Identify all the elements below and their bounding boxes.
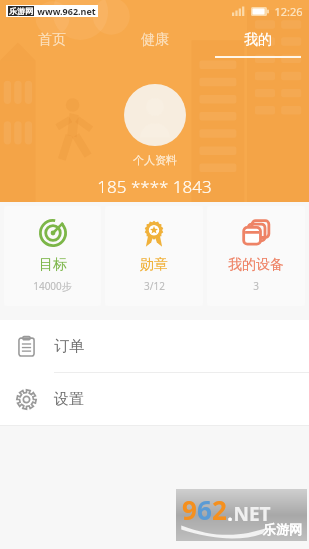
button[interactable]: 首页 bbox=[0, 31, 103, 58]
staticText: 勋章 bbox=[140, 256, 168, 274]
staticText: 健康 bbox=[141, 31, 169, 49]
button[interactable]: 我的 bbox=[206, 31, 309, 58]
staticText: 3/12 bbox=[144, 279, 165, 293]
staticText: 185 **** 1843 bbox=[97, 175, 212, 198]
staticText: 2 bbox=[212, 492, 227, 527]
button[interactable]: 设置 bbox=[0, 373, 309, 425]
staticText: 我的 bbox=[244, 31, 272, 49]
button[interactable]: 订单 bbox=[0, 320, 309, 372]
staticText: . bbox=[227, 500, 233, 527]
staticText: 14000步 bbox=[33, 279, 72, 293]
staticText: 订单 bbox=[54, 337, 84, 356]
staticText: 目标 bbox=[39, 256, 67, 274]
staticText: 个人资料 bbox=[133, 153, 177, 167]
button[interactable]: 我的设备 bbox=[207, 206, 305, 306]
staticText: 我的设备 bbox=[228, 256, 284, 274]
staticText: 首页 bbox=[38, 31, 66, 49]
staticText: 乐游网 bbox=[9, 6, 33, 16]
button[interactable]: 目标 bbox=[4, 206, 101, 306]
button[interactable]: 健康 bbox=[103, 31, 206, 58]
staticText: 12:26 bbox=[274, 4, 303, 19]
staticText: www.962.net bbox=[37, 5, 96, 17]
staticText: 3 bbox=[253, 279, 259, 293]
staticText: 设置 bbox=[54, 390, 84, 409]
staticText: NET bbox=[233, 501, 271, 527]
staticText: 9 bbox=[182, 492, 197, 527]
staticText: 乐游网 bbox=[263, 521, 302, 537]
staticText: 6 bbox=[197, 492, 212, 527]
button[interactable]: 勋章 bbox=[105, 206, 203, 306]
button[interactable] bbox=[124, 84, 186, 146]
